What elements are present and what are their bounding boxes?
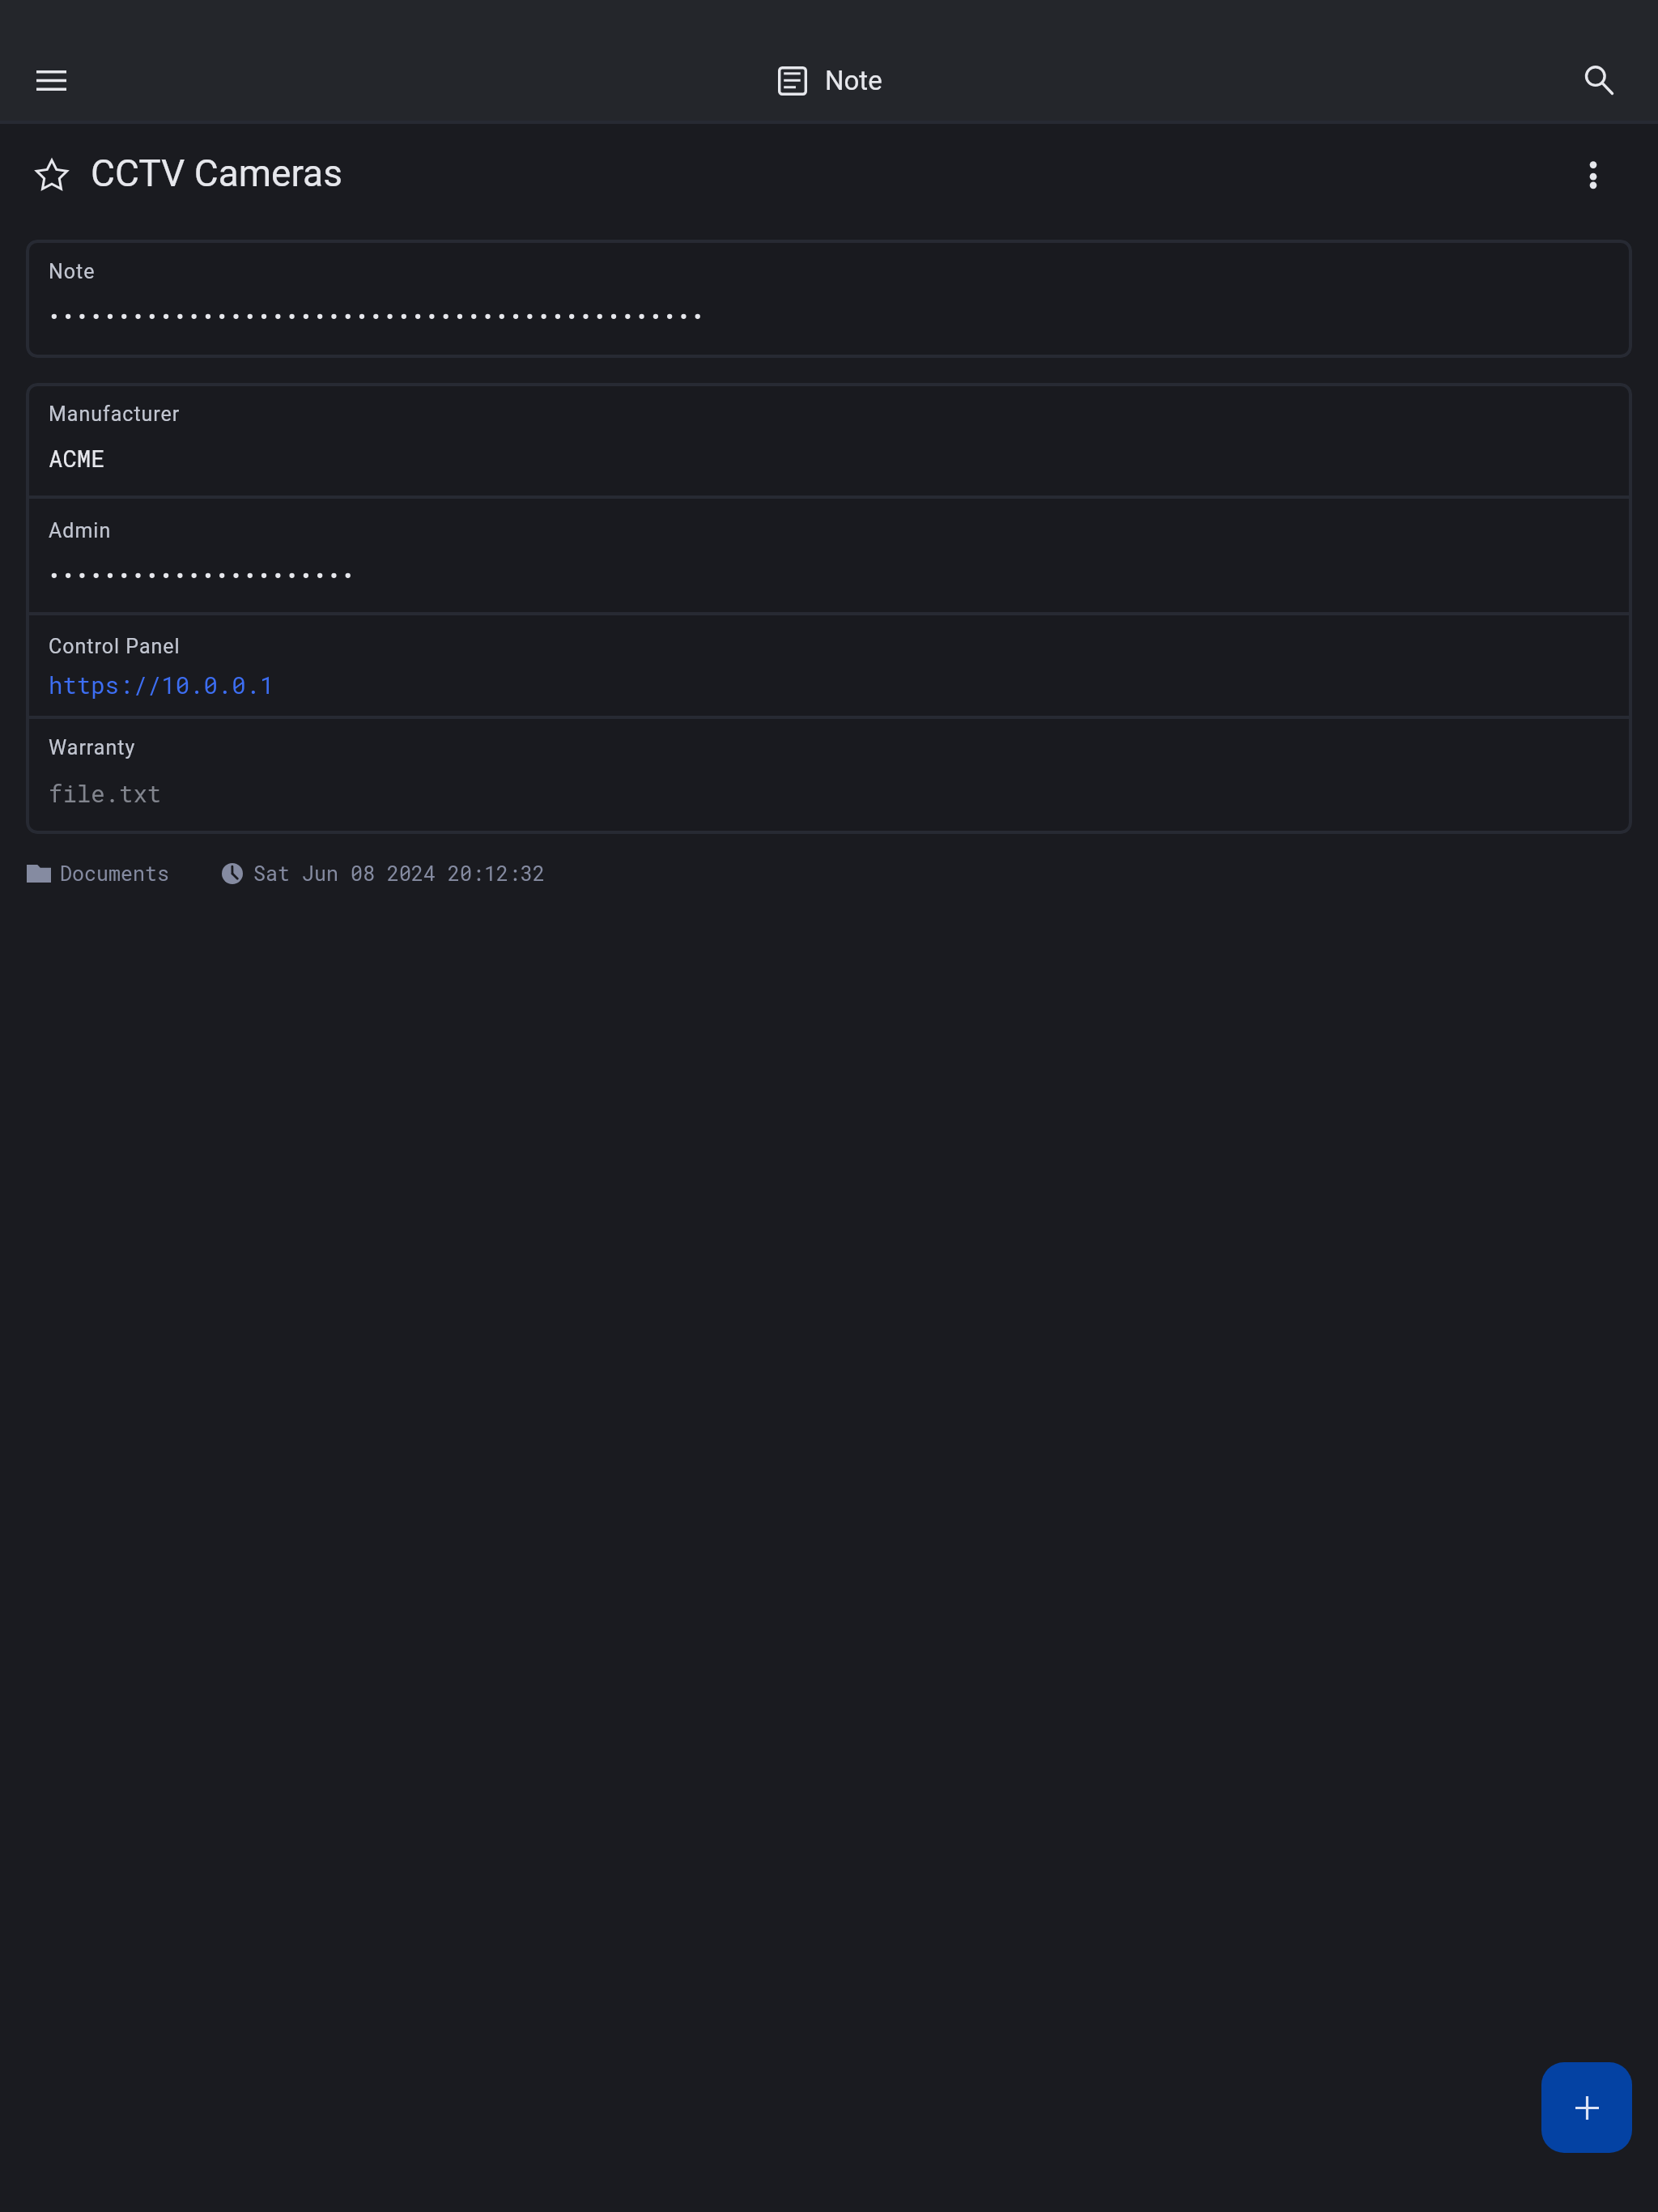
button[interactable]: Warranty (26, 719, 1632, 834)
staticText: CCTV Cameras (91, 151, 342, 195)
button[interactable]: Note (26, 240, 1632, 358)
button[interactable]: Control Panel (26, 615, 1632, 716)
button[interactable]: Manufacturer (26, 383, 1632, 496)
button[interactable]: Search (1541, 40, 1658, 121)
staticText: https://10.0.0.1 (49, 670, 274, 700)
button[interactable]: Add (1541, 2062, 1632, 2153)
staticText: Control Panel (49, 635, 181, 658)
staticText: file.txt (49, 778, 162, 809)
staticText: Note (825, 65, 882, 96)
staticText: Warranty (49, 736, 136, 759)
button[interactable]: Favourite (0, 124, 91, 223)
staticText: ACME (49, 443, 105, 474)
staticText: Documents (60, 860, 170, 887)
staticText: Note (49, 260, 96, 283)
staticText: Admin (49, 519, 112, 542)
button[interactable]: Admin (26, 499, 1632, 612)
button[interactable]: More options (1528, 124, 1658, 223)
staticText: Sat Jun 08 2024 20:12:32 (253, 860, 546, 887)
staticText: Manufacturer (49, 402, 181, 426)
button[interactable]: Menu (0, 40, 117, 121)
